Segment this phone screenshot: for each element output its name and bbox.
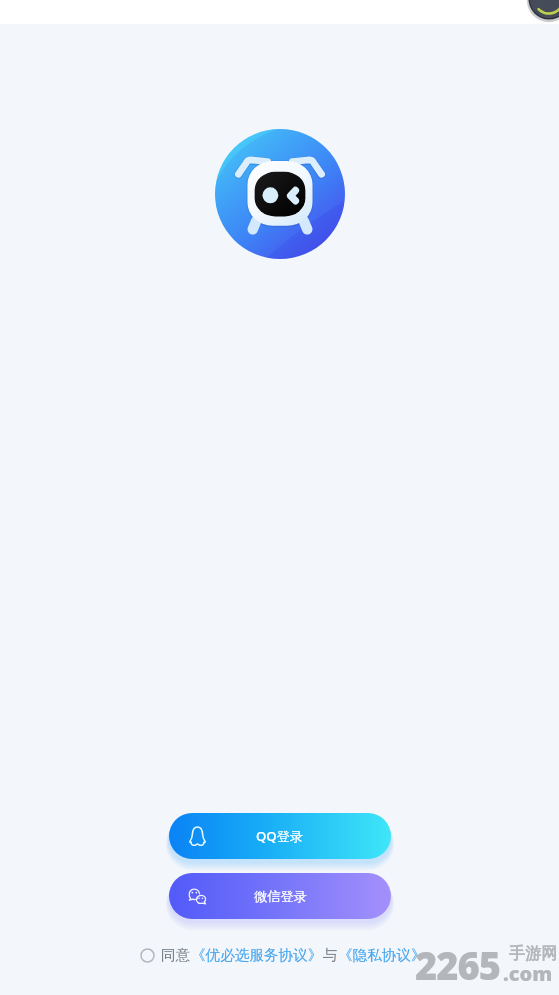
other: WeChat login	[187, 886, 208, 907]
staticText: QQ登录	[256, 827, 304, 845]
staticText: 微信登录	[254, 888, 307, 905]
staticText: 手游网	[509, 944, 557, 964]
staticText: .com	[503, 960, 553, 987]
staticText: 2265	[415, 939, 501, 991]
button[interactable]: Agree to the terms	[139, 947, 155, 963]
staticText: 同意	[161, 946, 191, 964]
staticText: 与	[323, 946, 338, 964]
button[interactable]: QQ登录	[169, 813, 391, 859]
button[interactable]: 《隐私协议》	[338, 946, 426, 964]
other: QQ login	[187, 826, 208, 847]
button[interactable]: 微信登录	[169, 873, 391, 919]
button[interactable]: 《优必选服务协议》	[191, 946, 323, 964]
